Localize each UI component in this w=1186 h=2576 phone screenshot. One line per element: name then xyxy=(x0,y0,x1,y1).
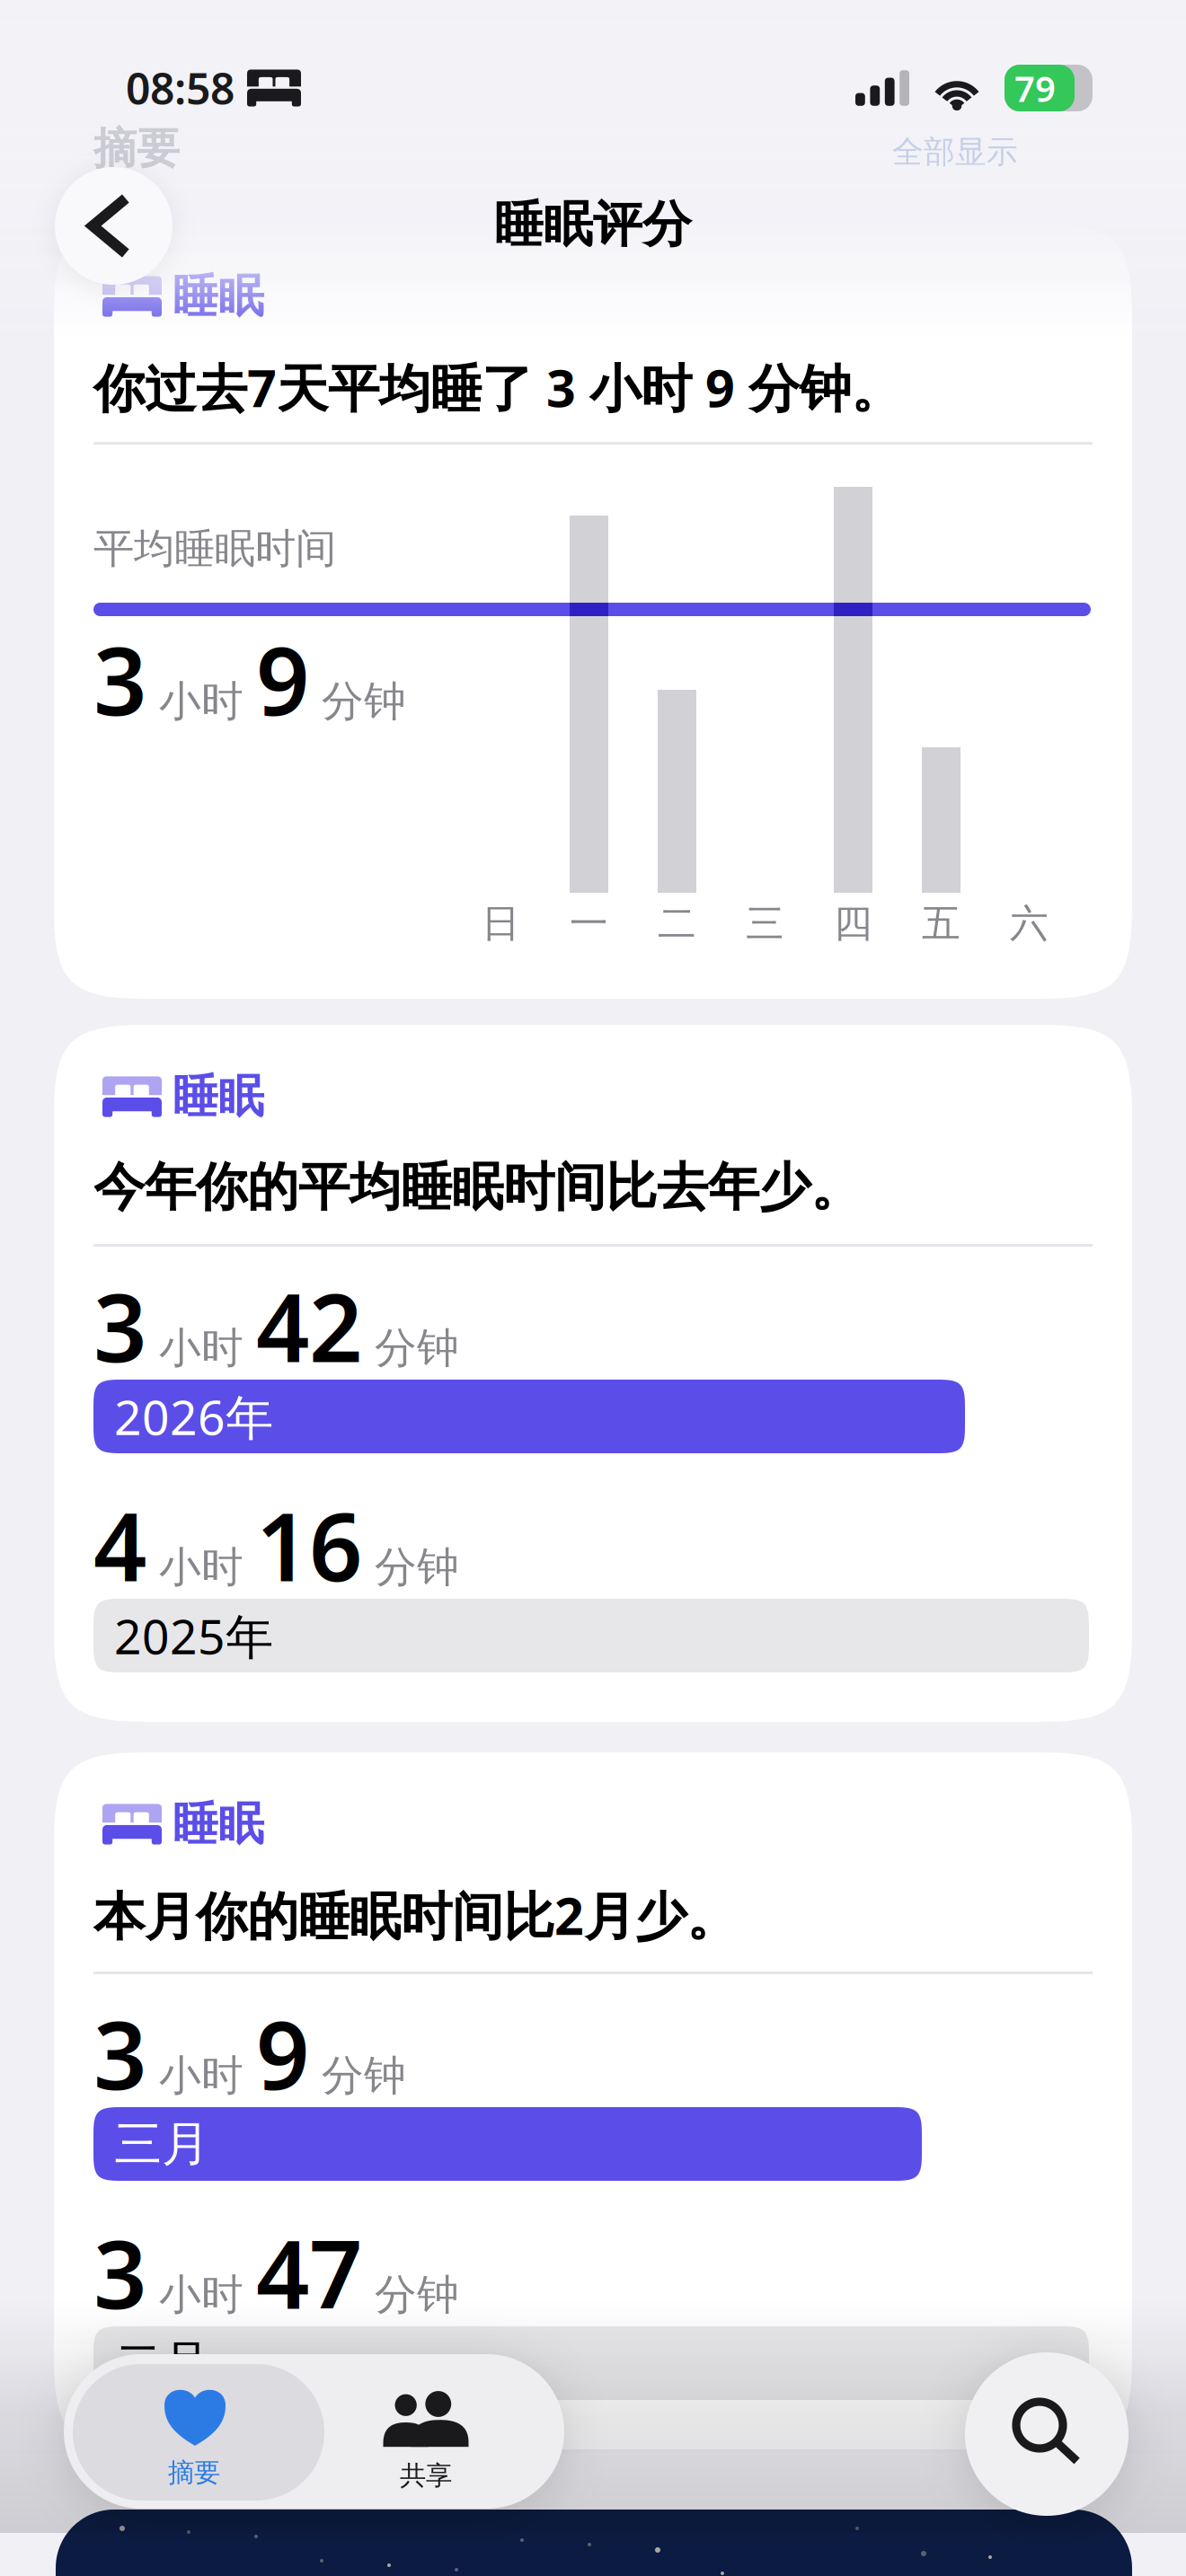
staticText: 小时 xyxy=(146,1541,256,1593)
staticText: 79 xyxy=(1014,64,1056,112)
staticText: 摘要 xyxy=(168,2456,220,2489)
staticText: 3 xyxy=(93,1991,146,2115)
button[interactable]: 搜索 xyxy=(965,2352,1128,2516)
staticText: 睡眠 xyxy=(173,1796,264,1852)
staticText: 全部显示 xyxy=(892,133,1018,171)
staticText: 分钟 xyxy=(362,1322,459,1374)
staticText: 分钟 xyxy=(309,2050,406,2101)
staticText: 9 xyxy=(256,617,309,741)
staticText: 睡眠 xyxy=(173,268,264,324)
staticText: 小时 xyxy=(146,1322,256,1374)
button[interactable]: 摘要 xyxy=(73,2364,324,2501)
staticText: 9 xyxy=(256,1991,309,2115)
staticText: 四 xyxy=(834,900,872,947)
staticText: 三 xyxy=(746,900,784,947)
staticText: 三月 xyxy=(114,2115,209,2173)
staticText: 平均睡眠时间 xyxy=(93,524,336,574)
staticText: 2025年 xyxy=(114,1604,273,1667)
staticText: 小时 xyxy=(146,2050,256,2101)
staticText: 47 xyxy=(256,2210,362,2334)
staticText: 今年你的平均睡眠时间比去年少。 xyxy=(93,1156,862,1219)
staticText: 二月 xyxy=(114,2334,209,2393)
staticText: 五 xyxy=(922,900,960,947)
staticText: 分钟 xyxy=(362,2269,459,2320)
staticText: 42 xyxy=(256,1264,362,1388)
button[interactable]: 返回 xyxy=(55,167,173,285)
staticText: 你过去7天平均睡了 3 小时 9 分钟。 xyxy=(93,353,902,421)
staticText: 08:58 xyxy=(126,59,235,117)
staticText: 摘要 xyxy=(93,122,180,175)
staticText: 3 xyxy=(93,2210,146,2334)
staticText: 3 xyxy=(93,1264,146,1388)
staticText: 分钟 xyxy=(309,676,406,727)
staticText: 睡眠 xyxy=(173,1069,264,1125)
staticText: 小时 xyxy=(146,2269,256,2320)
staticText: 2026年 xyxy=(114,1385,273,1448)
staticText: 睡眠评分 xyxy=(494,194,692,255)
staticText: 分钟 xyxy=(362,1541,459,1593)
staticText: 六 xyxy=(1010,900,1049,947)
staticText: 3 xyxy=(93,617,146,741)
staticText: 二 xyxy=(658,900,696,947)
staticText: 小时 xyxy=(146,676,256,727)
staticText: 日 xyxy=(482,900,520,947)
staticText: 一 xyxy=(570,900,608,947)
staticText: 本月你的睡眠时间比2月少。 xyxy=(93,1881,738,1949)
staticText: 共享 xyxy=(400,2459,452,2492)
staticText: 16 xyxy=(256,1483,362,1607)
button[interactable]: 共享 xyxy=(315,2364,536,2501)
staticText: 4 xyxy=(93,1483,146,1607)
